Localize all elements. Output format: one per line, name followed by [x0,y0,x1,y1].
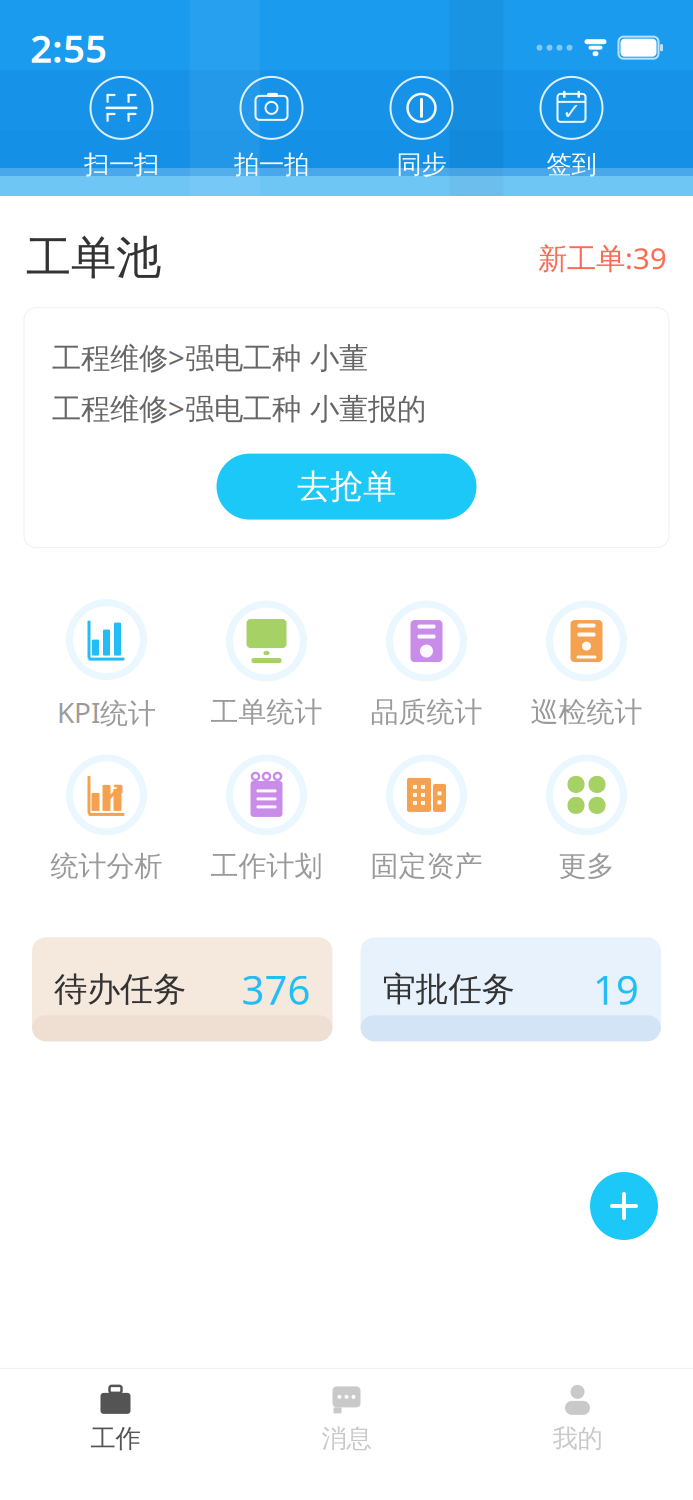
staticText: 新工单:39 [538,238,667,277]
button[interactable]: 拍一拍 [196,75,346,182]
button[interactable]: 同步 [346,75,496,182]
staticText: 我的 [552,1423,602,1454]
button[interactable]: ↗ [26,755,186,883]
staticText: ↗ [103,778,125,808]
staticText: 待办任务 [54,969,186,1010]
button[interactable]: 工程维修>强电工种 小董 [52,332,641,383]
staticText: 统计分析 [50,849,162,883]
button[interactable]: 工作 [0,1375,231,1460]
staticText: 扫一扫 [84,149,159,180]
staticText: 去抢单 [297,466,396,507]
button[interactable]: 固定资产 [346,755,506,883]
staticText: 376 [241,963,310,1016]
button[interactable]: 扫一扫 [46,75,196,182]
button[interactable]: ✓ [496,75,646,182]
staticText: 工程维修>强电工种 小董 [52,338,368,377]
staticText: 工单池 [26,230,161,286]
button[interactable]: KPI统计 [26,600,186,731]
staticText: 更多 [558,849,614,883]
staticText: ✓ [562,98,581,124]
button[interactable]: 待办任务 [32,937,332,1041]
button[interactable]: 审批任务 [360,937,661,1041]
staticText: 2:55 [30,22,107,73]
staticText: 工程维修>强电工种 小董报的 [52,389,426,428]
button[interactable]: 新建 [590,1172,658,1240]
staticText: 签到 [546,149,596,180]
staticText: 品质统计 [370,695,482,729]
button[interactable]: 去抢单 [216,454,476,520]
staticText: 消息 [321,1423,371,1454]
staticText: KPI统计 [57,694,156,731]
button[interactable]: 工程维修>强电工种 小董报的 [52,383,641,434]
staticText: 同步 [396,149,446,180]
button[interactable]: 我的 [462,1375,693,1460]
button[interactable]: 更多 [506,755,666,883]
staticText: 拍一拍 [234,149,309,180]
button[interactable]: 消息 [231,1375,462,1460]
staticText: 审批任务 [382,969,514,1010]
staticText: 工单统计 [210,695,322,729]
staticText: 工作计划 [210,849,322,883]
button[interactable]: 新工单:39 [538,234,667,281]
button[interactable]: 品质统计 [346,601,506,729]
button[interactable]: 工单统计 [186,601,346,729]
button[interactable]: 工作计划 [186,755,346,883]
staticText: 工作 [90,1423,140,1454]
staticText: 固定资产 [370,849,482,883]
staticText: 巡检统计 [530,695,642,729]
button[interactable]: 巡检统计 [506,601,666,729]
staticText: 19 [593,963,639,1016]
